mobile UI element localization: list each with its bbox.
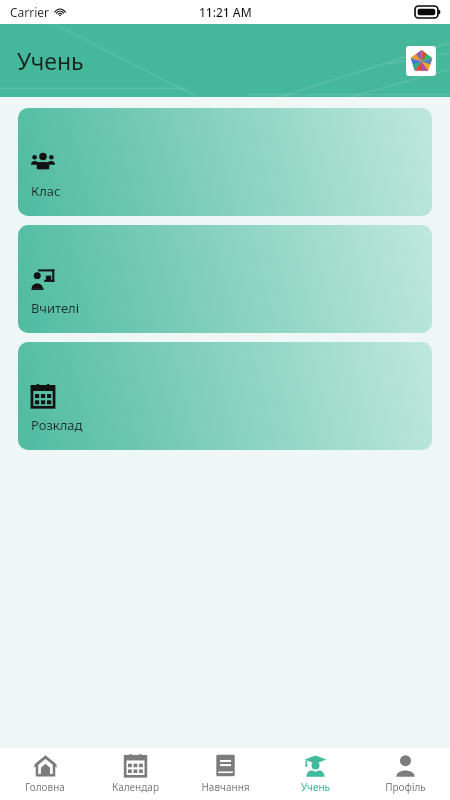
staticText: 11:21 AM — [199, 4, 252, 20]
button[interactable]: Навчання — [180, 748, 270, 800]
button[interactable]: Профіль — [360, 748, 450, 800]
staticText: Клас — [31, 182, 61, 200]
staticText: Головна — [25, 780, 65, 794]
staticText: Вчителі — [31, 299, 80, 317]
staticText: Навчання — [201, 780, 250, 794]
staticText: Календар — [112, 780, 159, 794]
staticText: Розклад — [31, 416, 83, 434]
staticText: Учень — [17, 45, 84, 76]
button[interactable]: Клас — [18, 108, 432, 216]
button[interactable]: Календар — [90, 748, 180, 800]
staticText: Учень — [301, 780, 330, 794]
staticText: Carrier — [10, 4, 50, 20]
button[interactable]: Учень — [270, 748, 360, 800]
staticText: Профіль — [385, 780, 426, 794]
button[interactable]: Розклад — [18, 342, 432, 450]
button[interactable]: Головна — [0, 748, 90, 800]
button[interactable]: App logo — [406, 46, 436, 76]
button[interactable]: Вчителі — [18, 225, 432, 333]
